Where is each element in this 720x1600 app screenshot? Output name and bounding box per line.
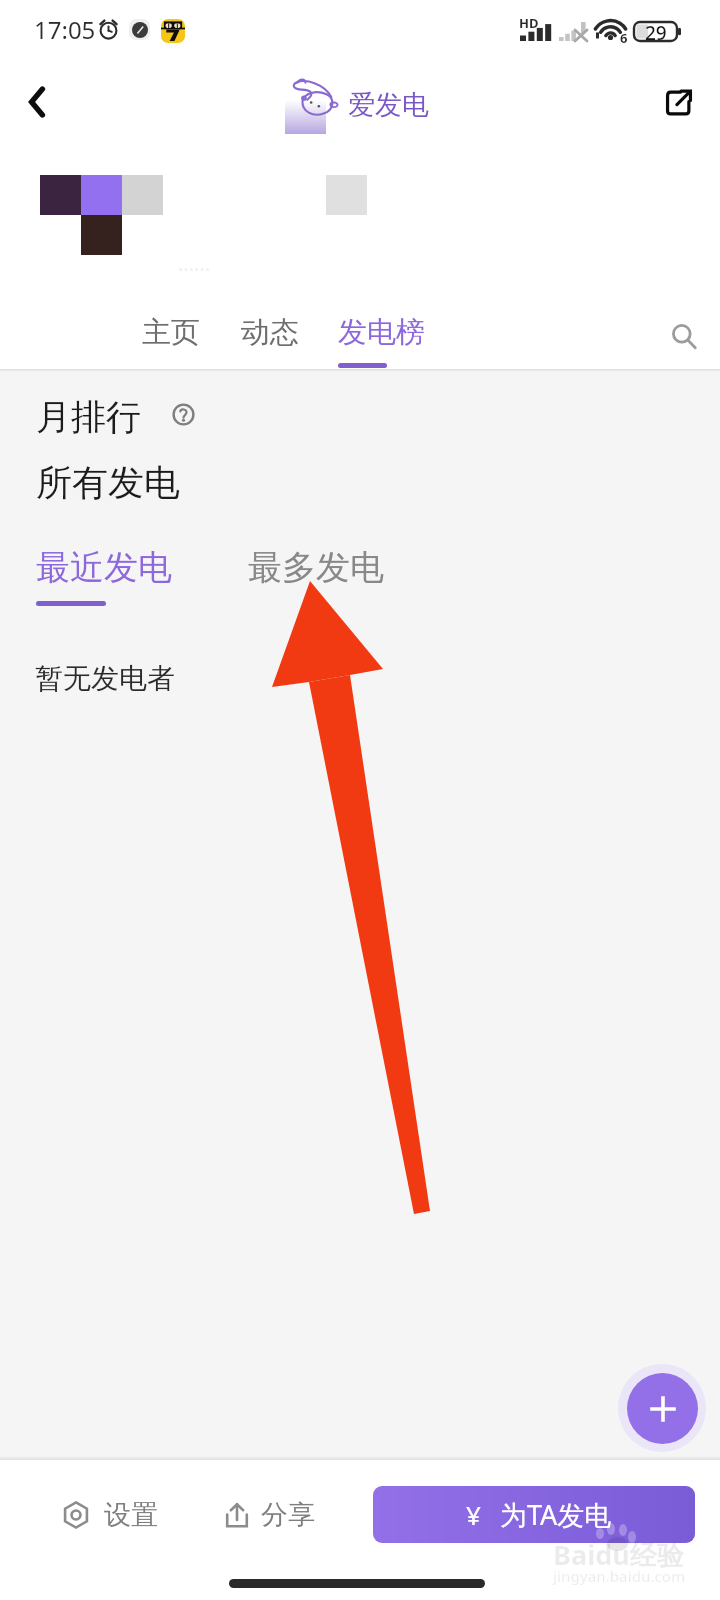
button[interactable]: Back (6, 71, 68, 133)
staticText: 设置 (104, 1498, 158, 1532)
button[interactable]: Add (627, 1373, 698, 1444)
button[interactable]: 发电榜 (338, 314, 425, 368)
button[interactable]: 最多发电 (248, 546, 384, 589)
staticText: 动态 (241, 314, 299, 351)
button[interactable]: Open in browser (650, 73, 708, 131)
button[interactable]: 分享 (223, 1498, 315, 1532)
staticText: 月排行 (36, 395, 141, 439)
staticText: 主页 (142, 314, 200, 351)
staticText: 最近发电 (36, 546, 172, 589)
staticText: 最多发电 (248, 546, 384, 589)
staticText: 所有发电 (36, 460, 180, 505)
button[interactable]: 主页 (142, 314, 200, 368)
staticText: jingyan.baidu.com (553, 1566, 686, 1586)
button[interactable]: 最近发电 (36, 546, 172, 606)
staticText: 爱发电 (348, 88, 429, 122)
button[interactable]: 动态 (241, 314, 299, 368)
staticText: 29 (645, 20, 667, 46)
staticText: 为TA发电 (500, 1496, 612, 1533)
staticText: 6 (620, 29, 628, 47)
staticText: 分享 (261, 1498, 315, 1532)
button[interactable]: Help (165, 396, 201, 432)
button[interactable]: 设置 (62, 1498, 158, 1532)
staticText: 暂无发电者 (35, 661, 175, 696)
staticText: 发电榜 (338, 314, 425, 351)
staticText: Baidu经验 (553, 1536, 684, 1573)
button[interactable]: ¥ (373, 1486, 695, 1543)
staticText: HD (519, 14, 539, 32)
staticText: 17:05 (34, 13, 96, 46)
button[interactable]: Search (659, 311, 709, 361)
staticText: ¥ (466, 1497, 481, 1532)
